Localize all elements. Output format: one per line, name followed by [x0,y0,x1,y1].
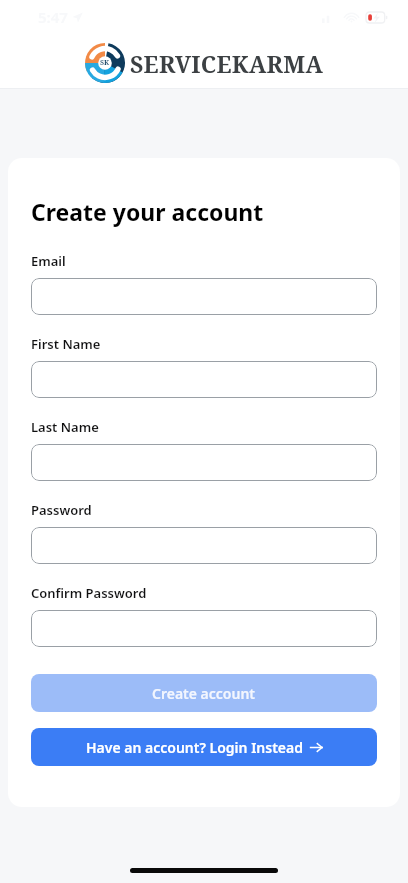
staticText: Have an account? Login Instead [86,738,303,757]
button[interactable]: Confirm Password [31,610,377,647]
button[interactable]: Create account [31,674,377,712]
button[interactable]: Email [31,278,377,315]
button[interactable]: Password [31,527,377,564]
staticText: Confirm Password [31,584,147,602]
button[interactable]: Have an account? Login Instead [31,728,377,766]
button[interactable]: Last Name [31,444,377,481]
staticText: 5:47 [38,7,68,27]
staticText: SK [100,58,110,68]
staticText: Last Name [31,418,99,436]
staticText: Create your account [31,196,264,227]
button[interactable]: First Name [31,361,377,398]
staticText: Email [31,252,66,270]
staticText: Password [31,501,92,519]
staticText: First Name [31,335,101,353]
staticText: SERVICEKARMA [130,48,324,79]
staticText: Create account [152,684,256,703]
